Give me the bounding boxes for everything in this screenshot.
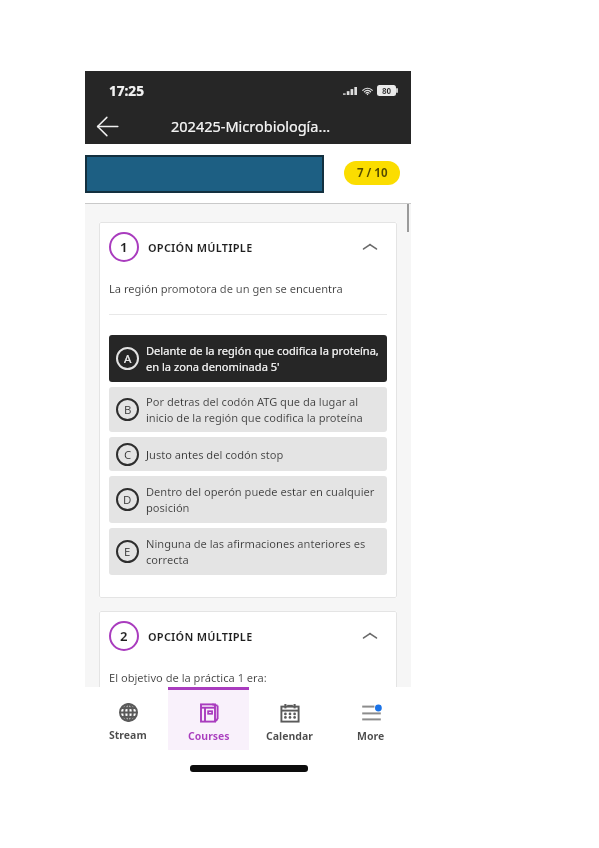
staticText: E xyxy=(124,544,131,560)
staticText: Calendar xyxy=(266,729,313,743)
button[interactable]: 1 xyxy=(99,226,397,268)
button[interactable]: Courses xyxy=(168,687,249,750)
other: Calendar xyxy=(280,703,300,723)
staticText: Ninguna de las afirmaciones anteriores e… xyxy=(146,536,383,567)
staticText: More xyxy=(357,729,385,743)
button[interactable]: Collapse xyxy=(358,235,382,259)
button[interactable]: A xyxy=(109,335,387,382)
other: More xyxy=(361,703,381,723)
staticText: OPCIÓN MÚLTIPLE xyxy=(148,629,253,644)
staticText: Dentro del operón puede estar en cualqui… xyxy=(146,484,383,515)
button[interactable]: B xyxy=(109,387,387,432)
staticText: La región promotora de un gen se encuent… xyxy=(109,281,343,296)
button[interactable]: Back xyxy=(91,109,124,142)
staticText: A xyxy=(124,351,132,367)
staticText: 80 xyxy=(382,85,392,96)
staticText: Por detras del codón ATG que da lugar al… xyxy=(146,394,383,425)
other: Stream xyxy=(119,703,138,722)
button[interactable]: 2 xyxy=(99,615,397,657)
button[interactable]: E xyxy=(109,528,387,575)
staticText: Delante de la región que codifica la pro… xyxy=(146,343,383,374)
staticText: Courses xyxy=(188,729,230,743)
staticText: 7 / 10 xyxy=(357,165,388,181)
button[interactable]: 7 / 10 xyxy=(344,161,400,185)
button[interactable]: More xyxy=(330,687,411,750)
staticText: El objetivo de la práctica 1 era: xyxy=(109,670,267,685)
staticText: Stream xyxy=(109,728,147,742)
staticText: 17:25 xyxy=(109,81,144,100)
staticText: 2 xyxy=(120,627,128,645)
staticText: B xyxy=(124,402,132,418)
button[interactable]: Calendar xyxy=(249,687,330,750)
button[interactable]: C xyxy=(109,437,387,471)
staticText: 1 xyxy=(120,238,128,256)
staticText: Justo antes del codón stop xyxy=(146,447,383,462)
other: Courses xyxy=(199,703,219,723)
staticText: OPCIÓN MÚLTIPLE xyxy=(148,240,253,255)
staticText: C xyxy=(124,447,132,463)
button[interactable]: Collapse xyxy=(358,624,382,648)
button[interactable]: D xyxy=(109,476,387,523)
staticText: D xyxy=(123,492,132,508)
staticText: 202425-Microbiología... xyxy=(171,116,331,136)
button[interactable]: Stream xyxy=(88,687,168,750)
